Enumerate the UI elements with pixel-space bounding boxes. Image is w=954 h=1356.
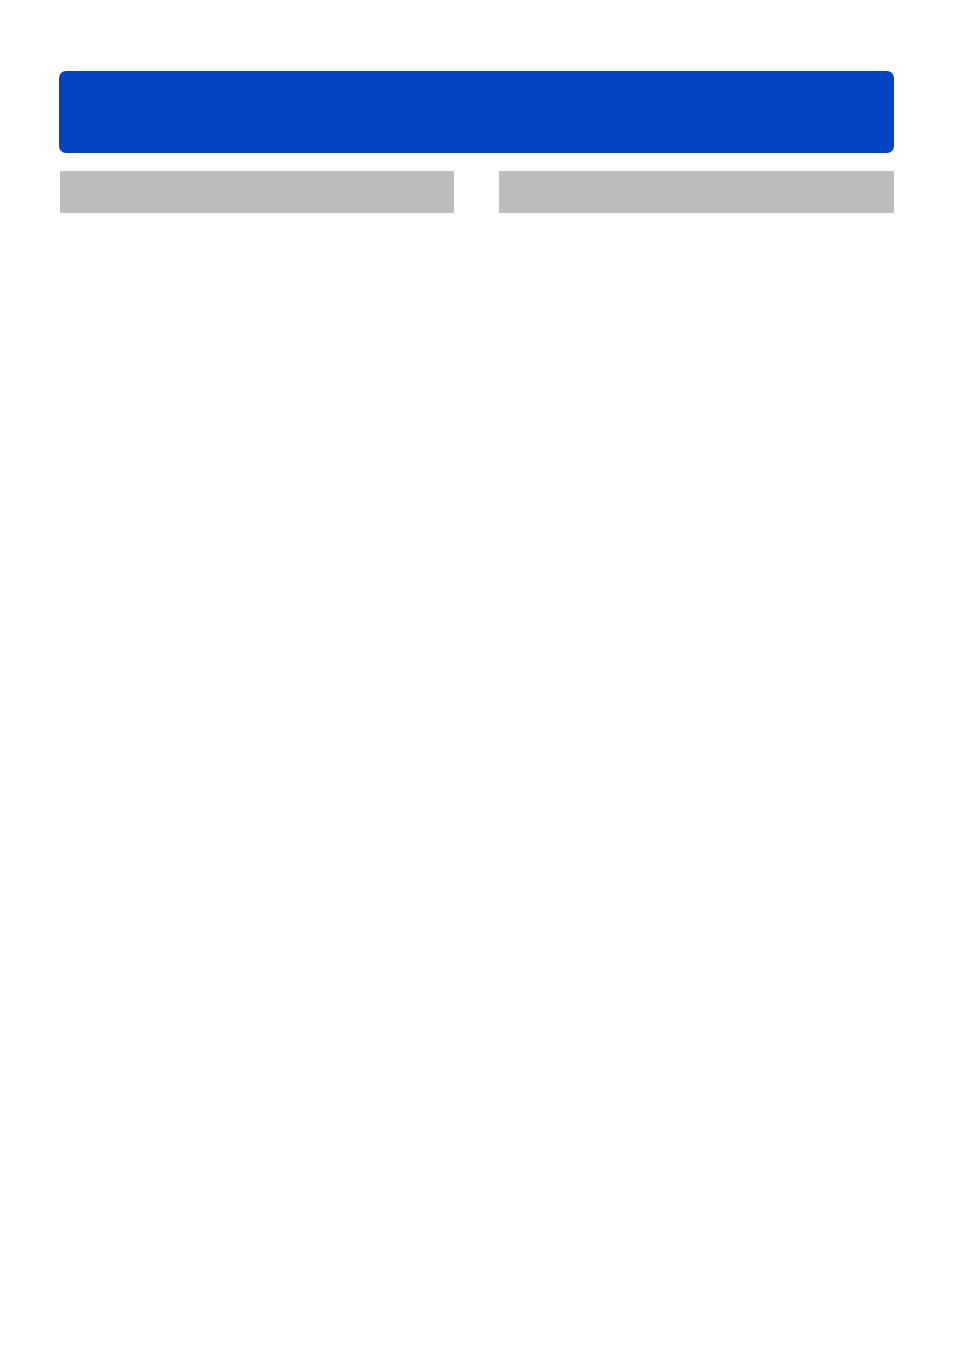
button[interactable]: Primary action bbox=[59, 71, 894, 153]
